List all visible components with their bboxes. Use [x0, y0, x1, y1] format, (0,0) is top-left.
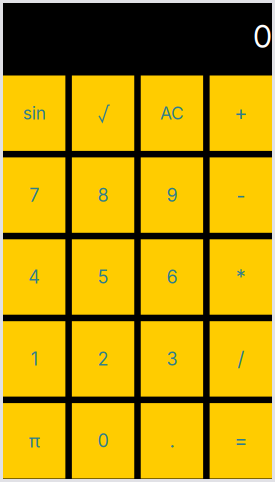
button[interactable]: . [141, 403, 203, 478]
button[interactable]: = [210, 403, 272, 478]
button[interactable]: + [210, 75, 272, 151]
button[interactable]: * [210, 239, 272, 315]
button[interactable]: 3 [141, 321, 203, 397]
button[interactable]: 8 [72, 157, 134, 233]
button[interactable]: / [210, 321, 272, 397]
staticText: 0 [253, 18, 272, 55]
staticText: . [169, 429, 174, 452]
button[interactable]: π [3, 403, 65, 478]
staticText: 9 [166, 184, 177, 206]
button[interactable]: 0 [72, 403, 134, 478]
staticText: 1 [31, 348, 38, 370]
button[interactable]: - [210, 157, 272, 233]
staticText: + [234, 101, 247, 125]
staticText: 3 [166, 348, 177, 370]
staticText: sin [23, 103, 46, 124]
button[interactable]: 2 [72, 321, 134, 397]
button[interactable]: 5 [72, 239, 134, 315]
staticText: 4 [28, 266, 40, 288]
staticText: * [236, 265, 246, 289]
staticText: = [234, 429, 247, 453]
staticText: π [29, 429, 40, 452]
button[interactable]: 1 [3, 321, 65, 397]
staticText: 7 [29, 184, 39, 206]
staticText: - [236, 183, 245, 207]
staticText: 6 [166, 266, 177, 288]
staticText: 8 [98, 184, 109, 206]
staticText: 0 [98, 430, 109, 452]
button[interactable]: Square root [72, 75, 134, 151]
button[interactable]: AC [141, 75, 203, 151]
button[interactable]: sin [3, 75, 65, 151]
staticText: 5 [98, 266, 109, 288]
button[interactable]: 6 [141, 239, 203, 315]
staticText: 2 [98, 348, 109, 370]
staticText: / [237, 347, 244, 371]
button[interactable]: 9 [141, 157, 203, 233]
button[interactable]: 4 [3, 239, 65, 315]
button[interactable]: 7 [3, 157, 65, 233]
staticText: AC [160, 103, 184, 124]
